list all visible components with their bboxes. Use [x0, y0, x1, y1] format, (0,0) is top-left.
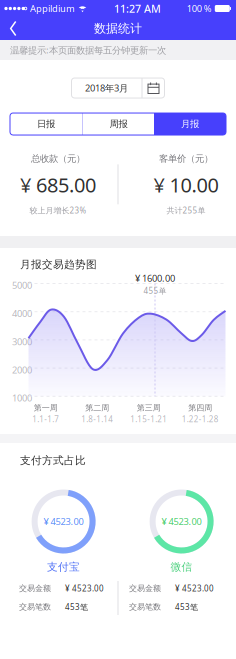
staticText: 2000	[12, 364, 32, 376]
staticText: 共计255单	[166, 205, 205, 216]
staticText: 月报交易趋势图	[20, 258, 97, 271]
staticText: 客单价（元）	[159, 153, 213, 164]
staticText: ¥ 4523.00	[175, 583, 214, 594]
staticText: 数据统计	[94, 21, 142, 36]
staticText: ¥ 4523.00	[44, 515, 84, 528]
staticText: 月报	[181, 118, 199, 130]
staticText: ¥ 685.00	[20, 171, 96, 198]
staticText: 1.8-1.14	[81, 414, 113, 424]
staticText: 5000	[12, 279, 32, 291]
staticText: 453笔	[65, 602, 88, 612]
button[interactable]: Back	[0, 17, 24, 40]
button[interactable]: 日报	[10, 113, 82, 135]
staticText: 交易金额	[129, 583, 161, 593]
staticText: 1.15-1.21	[130, 414, 167, 424]
staticText: 交易笔数	[129, 602, 161, 612]
staticText: 453笔	[175, 602, 198, 612]
staticText: 温馨提示:本页面数据每五分钟更新一次	[10, 44, 166, 56]
staticText: Appildium	[30, 2, 75, 15]
staticText: 第一周	[34, 403, 58, 413]
staticText: 3000	[12, 335, 32, 348]
button[interactable]: 周报	[83, 113, 154, 135]
staticText: 微信	[171, 560, 193, 574]
staticText: 1.22-1.28	[182, 414, 219, 424]
staticText: ¥ 10.00	[153, 171, 218, 198]
staticText: ¥ 4523.00	[65, 583, 104, 594]
staticText: 第二周	[85, 403, 109, 413]
staticText: 第四周	[188, 403, 212, 413]
staticText: 日报	[37, 118, 55, 130]
staticText: 1000	[12, 392, 32, 404]
staticText: 4000	[12, 307, 32, 320]
staticText: 2018年3月	[85, 82, 128, 94]
staticText: ¥ 4523.00	[162, 515, 202, 528]
staticText: 交易金额	[19, 583, 51, 593]
staticText: 11:27 AM	[114, 1, 161, 16]
staticText: 第三周	[137, 403, 161, 413]
button[interactable]: 2018年3月	[71, 78, 164, 98]
staticText: ¥ 1600.00	[135, 272, 175, 284]
staticText: 455单	[143, 285, 166, 296]
staticText: 周报	[109, 118, 127, 130]
staticText: 支付方式占比	[20, 454, 86, 467]
staticText: 1.1-1.7	[32, 414, 59, 424]
staticText: 支付宝	[47, 560, 80, 574]
staticText: 交易笔数	[19, 602, 51, 612]
staticText: 总收款（元）	[31, 153, 85, 164]
staticText: 较上月增长23%	[29, 205, 86, 216]
button[interactable]: 月报	[154, 113, 226, 135]
staticText: 100 %	[187, 2, 212, 15]
